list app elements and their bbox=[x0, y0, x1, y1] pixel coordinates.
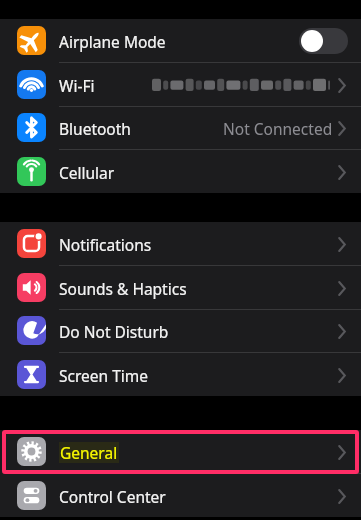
button[interactable]: Notifications bbox=[0, 222, 361, 266]
button[interactable]: Screen Time bbox=[0, 353, 361, 397]
button[interactable]: General bbox=[0, 430, 361, 474]
staticText: Not Connected bbox=[223, 118, 333, 139]
staticText: General bbox=[60, 442, 118, 463]
button[interactable]: Airplane Mode bbox=[0, 19, 361, 63]
staticText: Do Not Disturb bbox=[59, 321, 169, 342]
staticText: Airplane Mode bbox=[59, 31, 166, 52]
button[interactable]: Wi-Fi bbox=[0, 63, 361, 107]
button[interactable]: Control Center bbox=[0, 474, 361, 518]
staticText: Control Center bbox=[59, 486, 166, 507]
button[interactable]: Do Not Disturb bbox=[0, 309, 361, 353]
staticText: Screen Time bbox=[59, 365, 148, 386]
button[interactable]: Sounds & Haptics bbox=[0, 266, 361, 310]
staticText: Sounds & Haptics bbox=[59, 278, 187, 299]
staticText: Notifications bbox=[59, 234, 152, 255]
staticText: Wi-Fi bbox=[59, 75, 95, 96]
button[interactable]: Cellular bbox=[0, 150, 361, 194]
button[interactable]: Airplane Mode toggle bbox=[299, 28, 348, 54]
staticText: Bluetooth bbox=[59, 118, 131, 139]
button[interactable]: Bluetooth bbox=[0, 106, 361, 150]
staticText: Cellular bbox=[59, 162, 115, 183]
